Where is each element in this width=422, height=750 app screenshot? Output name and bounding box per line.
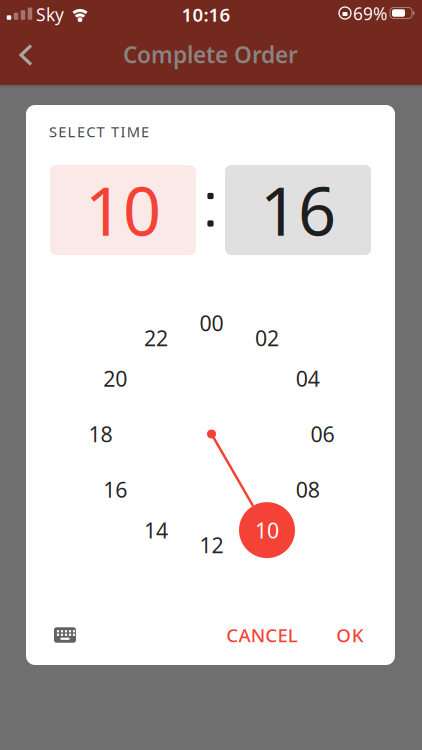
- staticText: 20: [103, 364, 127, 393]
- staticText: 06: [310, 420, 334, 448]
- staticText: 14: [144, 516, 168, 544]
- staticText: E: [141, 122, 149, 141]
- staticText: C: [86, 122, 95, 141]
- button[interactable]: Hour 10: [50, 165, 196, 255]
- staticText: E: [58, 122, 66, 141]
- staticText: T: [96, 122, 104, 141]
- button[interactable]: Switch to text input: [53, 626, 77, 644]
- staticText: 02: [255, 324, 279, 352]
- staticText: C: [226, 623, 238, 647]
- staticText: 10:16: [181, 2, 230, 27]
- button[interactable]: O: [328, 615, 372, 655]
- staticText: 08: [296, 475, 320, 504]
- staticText: 00: [199, 309, 223, 337]
- staticText: 22: [144, 324, 168, 352]
- staticText: Complete Order: [123, 39, 298, 69]
- staticText: T: [111, 122, 119, 141]
- staticText: C: [265, 623, 277, 647]
- staticText: 10: [255, 516, 279, 544]
- button[interactable]: Back: [18, 43, 34, 67]
- staticText: A: [239, 623, 251, 647]
- staticText: N: [251, 623, 265, 647]
- staticText: O: [336, 623, 351, 647]
- staticText: S: [49, 122, 57, 141]
- button[interactable]: C: [218, 615, 306, 655]
- staticText: L: [288, 623, 298, 647]
- staticText: I: [120, 122, 125, 141]
- staticText: 10: [85, 166, 161, 254]
- staticText: M: [127, 122, 140, 141]
- staticText: 16: [103, 475, 127, 504]
- staticText: E: [77, 122, 85, 141]
- staticText: K: [352, 623, 364, 647]
- staticText: 18: [88, 420, 112, 448]
- staticText: 04: [296, 364, 320, 393]
- staticText: 12: [199, 531, 223, 559]
- staticText: 16: [260, 166, 336, 254]
- button[interactable]: Minute 16: [225, 165, 371, 255]
- staticText: L: [68, 122, 76, 141]
- staticText: E: [277, 623, 287, 647]
- staticText: 69%: [353, 2, 387, 25]
- staticText: Sky: [36, 3, 64, 26]
